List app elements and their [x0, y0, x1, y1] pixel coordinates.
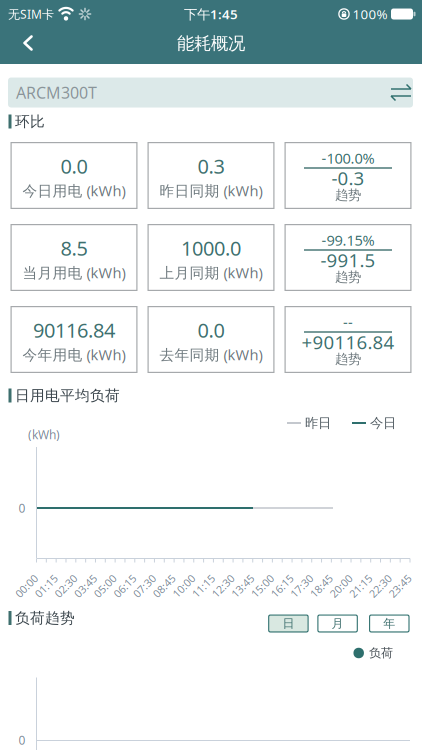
staticText: 今日 — [370, 415, 396, 431]
button[interactable]: 月 — [317, 614, 358, 632]
staticText: 当月用电 (kWh) — [22, 263, 125, 282]
staticText: 07:30 — [131, 579, 158, 593]
staticText: 06:15 — [111, 579, 138, 593]
staticText: 负荷 — [369, 646, 393, 660]
staticText: 18:45 — [308, 579, 335, 593]
staticText: 趋势 — [335, 187, 361, 203]
staticText: 年 — [383, 616, 395, 631]
staticText: 16:15 — [269, 579, 296, 593]
staticText: 0.0 — [60, 153, 87, 179]
staticText: -99.15% — [321, 230, 374, 250]
staticText: 环比 — [15, 112, 45, 130]
staticText: 1000.0 — [181, 235, 241, 261]
staticText: ARCM300T — [16, 82, 97, 103]
staticText: 03:45 — [72, 579, 99, 593]
staticText: 日用电平均负荷 — [15, 386, 120, 404]
staticText: 12:30 — [210, 579, 237, 593]
staticText: 今日用电 (kWh) — [22, 181, 125, 200]
staticText: 100% — [352, 5, 387, 23]
staticText: 能耗概况 — [177, 33, 245, 54]
staticText: 15:00 — [249, 579, 276, 593]
staticText: 21:15 — [347, 579, 374, 593]
staticText: 17:30 — [288, 579, 315, 593]
staticText: 0.3 — [197, 153, 224, 179]
staticText: 昨日 — [305, 415, 331, 431]
staticText: 0 — [18, 732, 25, 748]
button[interactable]: 返回 — [8, 25, 42, 61]
staticText: 01:15 — [33, 579, 60, 593]
staticText: 趋势 — [335, 269, 361, 285]
staticText: 13:45 — [229, 579, 256, 593]
button[interactable]: 日 — [268, 614, 309, 632]
staticText: 趋势 — [335, 351, 361, 367]
staticText: 8.5 — [60, 235, 87, 261]
button[interactable]: 切换设备 — [8, 77, 413, 107]
staticText: 00:00 — [13, 579, 40, 593]
staticText: (kWh) — [28, 426, 60, 442]
staticText: -0.3 — [331, 166, 364, 190]
staticText: 08:45 — [151, 579, 178, 593]
staticText: 23:45 — [386, 579, 413, 593]
staticText: +90116.84 — [301, 330, 394, 354]
staticText: 22:30 — [367, 579, 394, 593]
staticText: 月 — [332, 616, 344, 631]
button[interactable]: 年 — [369, 614, 410, 632]
staticText: 上月同期 (kWh) — [159, 263, 262, 282]
staticText: 0.0 — [197, 317, 224, 343]
staticText: 10:00 — [170, 579, 197, 593]
staticText: 无SIM卡 — [8, 6, 54, 22]
staticText: 日 — [282, 616, 294, 631]
staticText: 昨日同期 (kWh) — [159, 181, 262, 200]
staticText: 负荷趋势 — [15, 609, 75, 627]
staticText: 去年同期 (kWh) — [159, 345, 262, 364]
staticText: -991.5 — [320, 248, 375, 272]
staticText: 02:30 — [52, 579, 79, 593]
staticText: 0 — [18, 500, 25, 516]
staticText: 今年用电 (kWh) — [22, 345, 125, 364]
staticText: 11:15 — [190, 579, 217, 593]
staticText: 20:00 — [327, 579, 354, 593]
staticText: -100.0% — [321, 148, 374, 168]
staticText: 05:00 — [92, 579, 119, 593]
staticText: -- — [343, 312, 353, 332]
staticText: 90116.84 — [33, 317, 115, 343]
staticText: 下午1:45 — [184, 5, 238, 23]
